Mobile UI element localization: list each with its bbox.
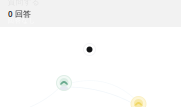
staticText: 0 回答 (8, 8, 31, 19)
staticText: 質問する (7, 0, 39, 7)
staticText: 回答なし (7, 16, 35, 25)
